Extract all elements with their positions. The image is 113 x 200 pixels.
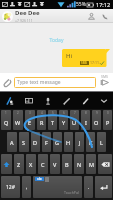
staticText: A [10,139,14,146]
staticText: U [72,119,77,126]
staticText: L [100,139,103,146]
button[interactable]: Hide keyboard [95,92,113,109]
button[interactable]: L [97,132,106,152]
button[interactable]: 5 [48,110,57,130]
button[interactable]: Keyboard layout [19,92,38,109]
staticText: Today [0,37,113,44]
button[interactable]: 0 [103,110,112,130]
staticText: 5 [52,111,54,115]
staticText: Y [62,119,66,126]
staticText: 4 [41,111,43,115]
staticText: 17:12 [96,1,111,8]
button[interactable]: Z [14,154,24,174]
button[interactable]: H [64,132,73,152]
staticText: M [89,161,94,168]
staticText: J [79,139,81,146]
staticText: X [29,161,33,168]
staticText: SMS [81,61,88,65]
button[interactable]: Type text message [14,77,96,88]
button[interactable]: M [86,154,96,174]
staticText: V [53,161,57,168]
staticText: O [94,119,99,126]
staticText: 6 [63,111,65,115]
staticText: 7 [74,111,76,115]
button[interactable]: S [19,132,29,152]
staticText: Dee Dee [15,9,40,17]
button[interactable]: X [26,154,36,174]
staticText: Z [17,161,21,168]
staticText: T [51,119,55,126]
button[interactable]: 6 [59,110,68,130]
button[interactable]: Attach file [0,73,14,91]
staticText: H [66,139,71,146]
staticText: Q [4,119,9,126]
button[interactable]: 12# [1,176,20,198]
button[interactable]: Comma [22,176,31,198]
button[interactable]: Send message [96,73,113,91]
staticText: R [40,119,44,126]
button[interactable]: N [74,154,84,174]
staticText: 12# [6,184,15,191]
staticText: I [85,119,87,126]
button[interactable]: 7 [70,110,79,130]
button[interactable]: 8 [81,110,90,130]
button[interactable]: 2 [13,110,23,130]
button[interactable]: D [31,132,40,152]
button[interactable]: Theme [76,92,95,109]
staticText: SMS [101,74,109,79]
button[interactable]: Shift [1,154,12,174]
staticText: , [26,184,28,191]
button[interactable]: Enter [95,176,112,198]
button[interactable]: G [53,132,62,152]
staticText: N [77,161,82,168]
button[interactable]: 3 [25,110,35,130]
staticText: G [55,139,60,146]
button[interactable]: Backspace [98,154,112,174]
staticText: 9 [96,111,98,115]
staticText: 3 [29,111,31,115]
staticText: P [106,119,110,126]
staticText: 8 [85,111,87,115]
staticText: F [45,139,48,146]
button[interactable]: Space [33,176,82,198]
button[interactable]: J [75,132,84,152]
button[interactable]: C [38,154,48,174]
button[interactable]: Voice input [38,92,57,109]
staticText: TouchPal [64,190,79,195]
button[interactable]: 4 [37,110,46,130]
staticText: abc [37,177,42,181]
staticText: 0 [107,111,109,115]
button[interactable]: F [42,132,51,152]
button[interactable]: TouchPal menu [0,92,19,109]
button[interactable]: V [50,154,60,174]
button[interactable]: Contact details [84,9,98,23]
button[interactable]: Edit [57,92,76,109]
staticText: S [22,139,26,146]
staticText: Type text message [17,79,61,86]
staticText: W [15,119,21,126]
staticText: B [65,161,69,168]
button[interactable]: 1 [1,110,11,130]
button[interactable]: Period [84,176,93,198]
button[interactable]: B [62,154,72,174]
staticText: 55% [76,1,86,8]
staticText: +7 926 111 [15,18,33,23]
staticText: K [89,139,93,146]
staticText: . [88,184,90,191]
button[interactable]: A [7,132,17,152]
button[interactable]: Call [98,9,112,23]
staticText: D [33,139,38,146]
button[interactable]: K [86,132,95,152]
staticText: E [28,119,32,126]
staticText: 17:11 [90,60,99,65]
staticText: 1 [5,111,7,115]
staticText: Hi [66,52,72,60]
staticText: C [41,161,45,168]
staticText: 2 [17,111,19,115]
button[interactable]: 9 [92,110,101,130]
